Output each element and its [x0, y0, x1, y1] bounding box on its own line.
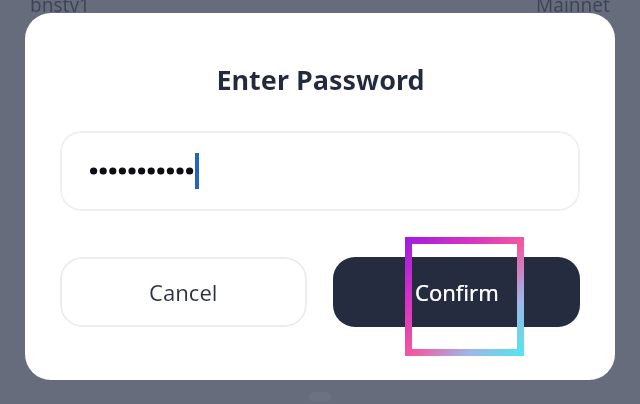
staticText: Enter Password: [216, 61, 425, 98]
staticText: bnstv1: [30, 0, 90, 18]
button[interactable]: Confirm: [333, 257, 580, 327]
staticText: Cancel: [149, 277, 218, 307]
button[interactable]: Cancel: [60, 257, 307, 327]
staticText: Mainnet: [536, 0, 610, 18]
staticText: Confirm: [415, 277, 499, 307]
other: Focus highlight: [405, 237, 524, 356]
button[interactable]: [60, 131, 580, 211]
